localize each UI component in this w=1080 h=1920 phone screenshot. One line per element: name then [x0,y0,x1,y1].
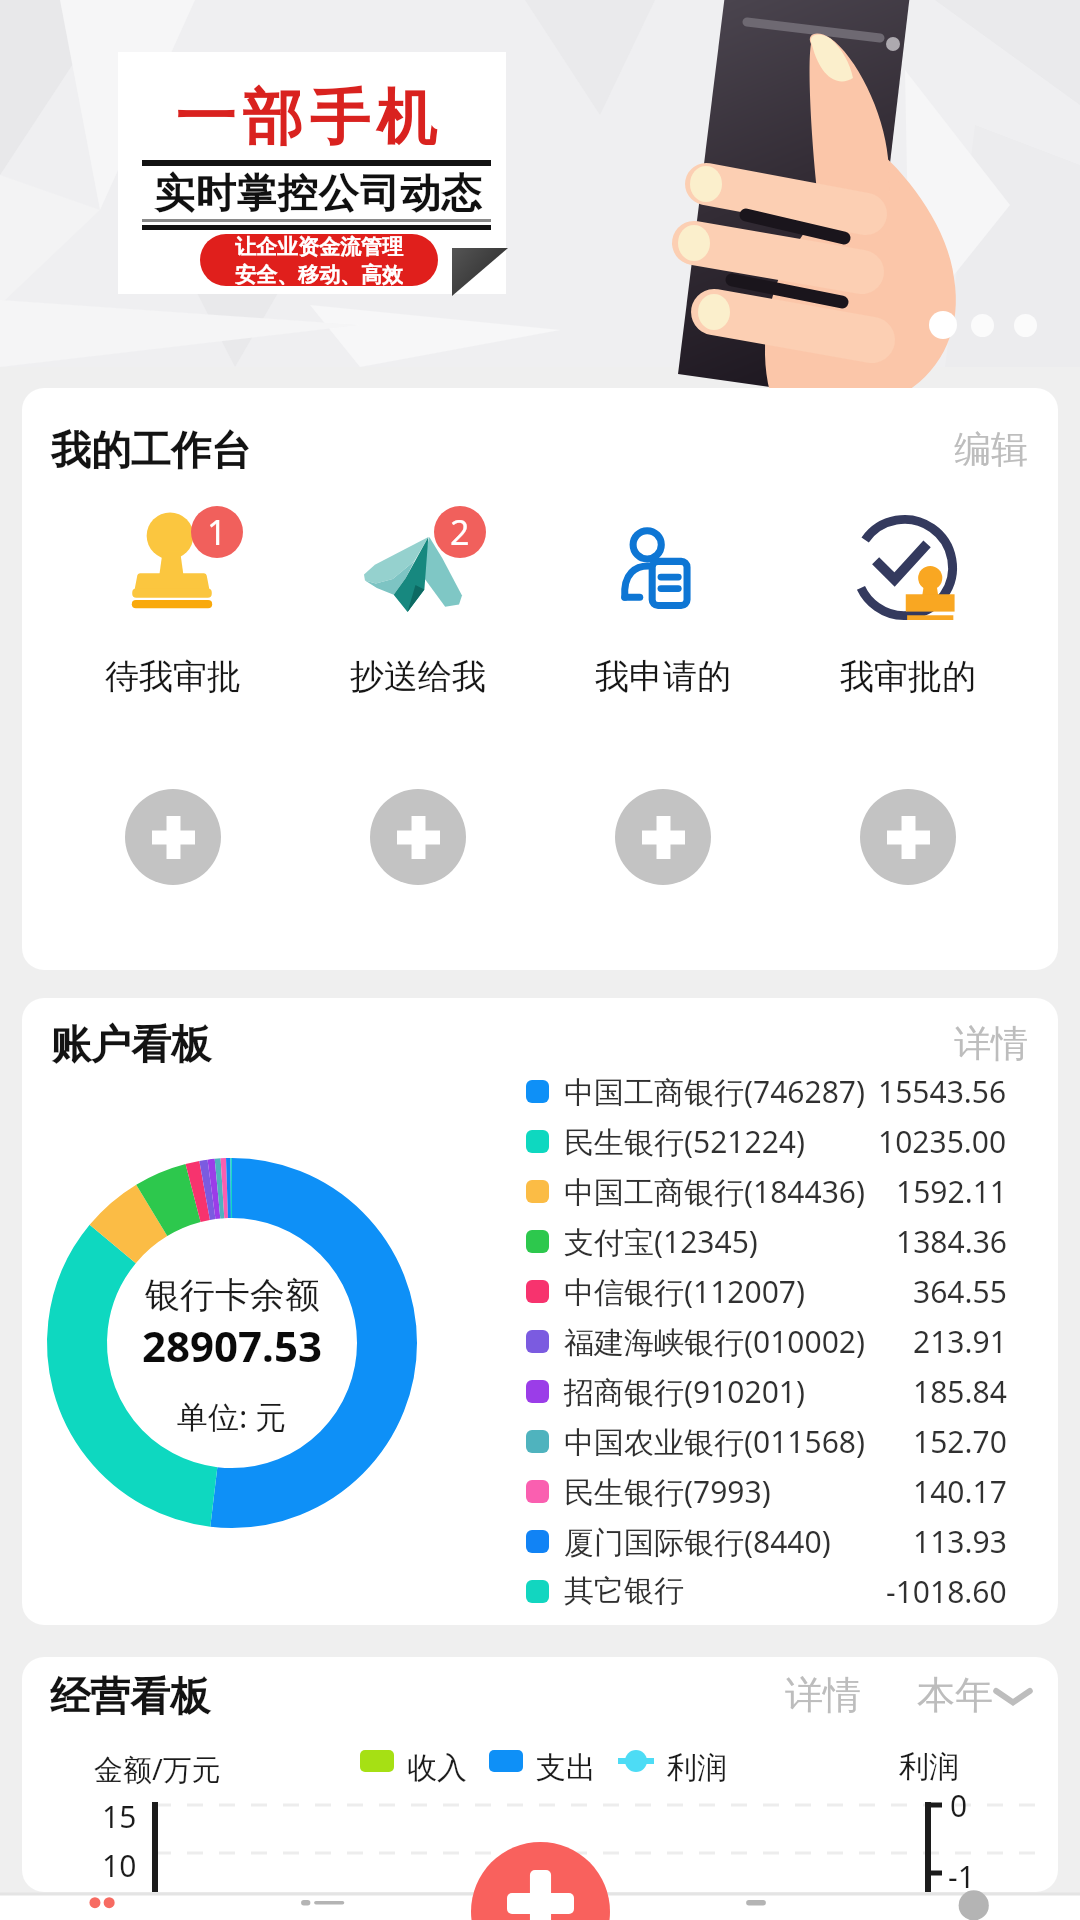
staticText: 中国农业银行(011568) [564,1421,865,1462]
button[interactable]: 我申请的 [540,506,785,698]
button[interactable]: 编辑 [944,416,1038,483]
button[interactable]: 民生银行(521224) [526,1116,1007,1166]
button[interactable]: 新建 [471,1842,610,1920]
button[interactable]: 添加应用 [370,789,466,885]
button[interactable]: 支付宝(12345) [526,1216,1007,1266]
button[interactable]: 审批 [216,1893,432,1920]
staticText: 我审批的 [840,655,976,698]
button[interactable]: 报表 [648,1893,864,1920]
staticText: -1 [948,1856,975,1892]
staticText: 140.17 [913,1471,1007,1512]
staticText: 账户看板 [51,1019,211,1069]
staticText: 实时掌控公司动态 [154,168,482,218]
staticText: 收入 [407,1749,467,1787]
staticText: 213.91 [913,1321,1007,1362]
staticText: 1592.11 [896,1171,1007,1212]
button[interactable]: 我的 [864,1893,1080,1920]
staticText: 2 [450,509,470,555]
staticText: 中国工商银行(184436) [564,1171,865,1212]
staticText: 一部手机 [172,80,440,156]
staticText: 我的工作台 [51,425,251,475]
staticText: 编辑 [954,426,1028,473]
staticText: 本年 [917,1671,993,1719]
staticText: 经营看板 [50,1671,210,1721]
staticText: 详情 [954,1020,1028,1067]
staticText: 我申请的 [595,655,731,698]
staticText: 抄送给我 [350,655,486,698]
staticText: 中信银行(112007) [564,1271,805,1312]
staticText: 113.93 [913,1521,1007,1562]
button[interactable]: 中国农业银行(011568) [526,1416,1007,1466]
staticText: 金额/万元 [94,1749,221,1789]
staticText: 安全、移动、高效 [235,262,403,286]
staticText: 让企业资金流管理 [235,234,403,260]
staticText: 支付宝(12345) [564,1221,758,1262]
staticText: 招商银行(910201) [564,1371,805,1412]
staticText: 支出 [536,1749,596,1787]
staticText: 28907.53 [142,1317,322,1374]
button[interactable]: 福建海峡银行(010002) [526,1316,1007,1366]
button[interactable]: 招商银行(910201) [526,1366,1007,1416]
staticText: 15 [102,1796,137,1837]
staticText: 中国工商银行(746287) [564,1071,865,1112]
button[interactable]: 我审批的 [785,506,1030,698]
staticText: 待我审批 [105,655,241,698]
button[interactable]: 中国工商银行(184436) [526,1166,1007,1216]
staticText: 详情 [785,1671,861,1719]
button[interactable]: 详情 [944,1010,1038,1077]
staticText: 185.84 [913,1371,1007,1412]
staticText: 10 [102,1845,137,1886]
staticText: 民生银行(7993) [564,1471,771,1512]
staticText: 单位: 元 [177,1395,287,1437]
button[interactable]: 中信银行(112007) [526,1266,1007,1316]
button[interactable]: 其它银行 [526,1566,1007,1616]
button[interactable]: 添加应用 [125,789,221,885]
button[interactable]: 中国工商银行(746287) [526,1066,1007,1116]
button[interactable]: 宣传横幅 [0,0,1080,367]
staticText: 银行卡余额 [145,1273,320,1317]
staticText: 其它银行 [564,1572,684,1610]
staticText: 10235.00 [878,1121,1007,1162]
staticText: 利润 [899,1748,959,1786]
staticText: -1018.60 [886,1571,1007,1612]
button[interactable]: 1 [50,506,295,698]
button[interactable]: 本年 [917,1661,1033,1729]
button[interactable]: 首页 [0,1893,216,1920]
staticText: 民生银行(521224) [564,1121,805,1162]
staticText: 福建海峡银行(010002) [564,1321,865,1362]
button[interactable]: 添加应用 [615,789,711,885]
staticText: 152.70 [913,1421,1007,1462]
button[interactable]: 2 [295,506,540,698]
staticText: 1 [207,509,227,555]
staticText: 0 [950,1785,968,1826]
staticText: 15543.56 [878,1071,1007,1112]
staticText: 364.55 [913,1271,1007,1312]
staticText: 厦门国际银行(8440) [564,1521,831,1562]
button[interactable]: 民生银行(7993) [526,1466,1007,1516]
button[interactable]: 详情 [775,1661,871,1729]
staticText: 利润 [667,1749,727,1787]
button[interactable]: 添加应用 [860,789,956,885]
button[interactable]: 厦门国际银行(8440) [526,1516,1007,1566]
staticText: 1384.36 [896,1221,1007,1262]
